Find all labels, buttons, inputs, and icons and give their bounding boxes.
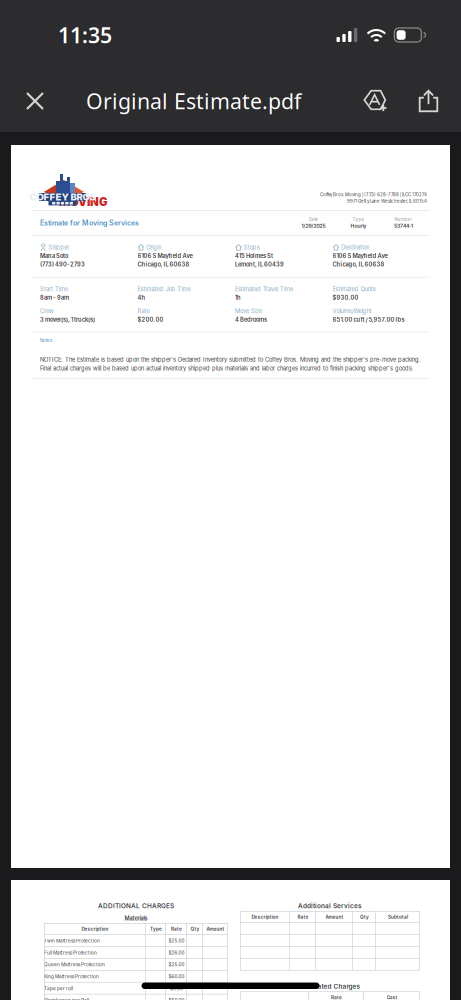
staticText: 9971 Getty Lane Westchester, IL 60154 [347, 198, 427, 204]
staticText: Twin Mattress Protection [44, 938, 100, 944]
staticText: Estimated Job Time [137, 286, 190, 293]
staticText: Description [251, 914, 278, 920]
staticText: $200.00 [137, 316, 163, 323]
staticText: Subtotal [388, 914, 408, 920]
staticText: Lemont, IL 60439 [235, 261, 284, 268]
staticText: 11:35 [58, 21, 112, 49]
staticText: 3 mover(s), 1 truck(s) [40, 316, 95, 323]
staticText: 6106 S Mayfield Ave [137, 252, 192, 259]
staticText: $26.00 [168, 950, 184, 955]
staticText: 53744-1 [394, 223, 413, 229]
button[interactable]: Markup [349, 70, 402, 132]
staticText: Final actual charges will be based upon … [40, 365, 414, 372]
staticText: Crew [40, 308, 54, 315]
staticText: Amount [206, 926, 224, 932]
staticText: Hourly [350, 223, 366, 229]
staticText: 415 Holmes St [235, 252, 273, 259]
staticText: Volume/Weight [332, 308, 371, 315]
staticText: Notes [40, 338, 52, 343]
staticText: $60.00 [168, 974, 184, 979]
staticText: $25.00 [168, 938, 184, 944]
staticText: 4 Bedrooms [235, 316, 267, 323]
staticText: Chicago, IL 60638 [332, 261, 384, 268]
button[interactable]: Share [402, 70, 455, 132]
staticText: $5.00 [170, 986, 183, 991]
staticText: Rate [297, 914, 308, 920]
staticText: NOTICE: The Estimate is based upon the s… [40, 356, 421, 363]
staticText: ADDITIONAL CHARGES [98, 902, 174, 910]
staticText: Estimated Quote [332, 286, 375, 293]
staticText: Full Mattress Protection [44, 950, 97, 955]
staticText: Cost [386, 995, 397, 1000]
staticText: 651.00 cuft / 5,957.00 lbs [332, 316, 404, 323]
button[interactable]: Close [6, 70, 64, 132]
staticText: Type [352, 217, 364, 222]
staticText: Estimated Charges [299, 983, 360, 990]
staticText: Rate [137, 308, 149, 315]
staticText: Description [81, 926, 108, 932]
staticText: Type [150, 926, 162, 932]
staticText: 4h [137, 294, 145, 301]
staticText: COFFEY BROS [29, 191, 95, 203]
staticText: Origin [146, 244, 161, 251]
staticText: Estimated Travel Time [235, 286, 293, 293]
staticText: (773) 490-2793 [40, 261, 85, 268]
staticText: $930.00 [332, 294, 358, 301]
staticText: Original Estimate.pdf [86, 87, 301, 115]
staticText: Start Time [40, 286, 68, 293]
staticText: 8am - 9am [40, 294, 69, 301]
staticText: Amount [325, 914, 343, 920]
staticText: MOVING [59, 195, 108, 209]
staticText: Number [394, 217, 412, 222]
staticText: Destination [341, 244, 369, 251]
staticText: Move Size [235, 308, 262, 315]
staticText: Date [308, 217, 318, 222]
staticText: Shipper [48, 244, 69, 251]
staticText: Tape per roll [44, 986, 73, 991]
staticText: Qty [360, 914, 369, 920]
staticText: $25.00 [168, 962, 184, 967]
staticText: Maria Soto [40, 252, 68, 259]
staticText: Chicago, IL 60638 [137, 261, 189, 268]
staticText: Materials [124, 915, 147, 922]
staticText: King Mattress Protection [44, 974, 99, 979]
staticText: 1/29/2025 [301, 223, 325, 229]
staticText: Estimate for Moving Services [40, 219, 139, 227]
staticText: Rate [331, 995, 342, 1000]
staticText: Coffey Bros. Moving | (773) 628-7788 | I… [320, 192, 427, 197]
staticText: Stops [244, 244, 260, 251]
staticText: 6106 S Mayfield Ave [332, 252, 387, 259]
staticText: Qty [190, 926, 199, 932]
staticText: Shrinkwrap per Roll [44, 997, 89, 1000]
staticText: Additional Services [298, 902, 362, 910]
staticText: $50.00 [168, 997, 184, 1000]
staticText: Rate [171, 926, 182, 932]
staticText: 1h [235, 294, 241, 301]
staticText: Queen Mattress Protection [44, 962, 105, 967]
